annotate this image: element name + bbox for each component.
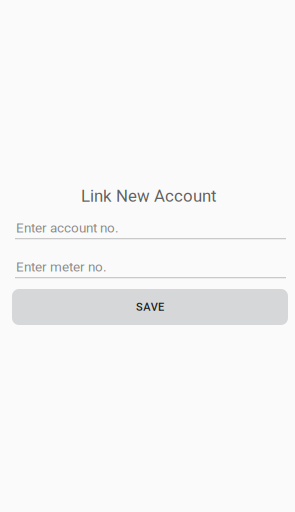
staticText: SAVE: [136, 300, 164, 313]
button[interactable]: Enter account no.: [15, 219, 286, 240]
staticText: Enter meter no.: [16, 259, 107, 275]
button[interactable]: Enter meter no.: [15, 258, 286, 279]
button[interactable]: SAVE: [12, 289, 288, 325]
staticText: Enter account no.: [16, 220, 119, 236]
staticText: Link New Account: [81, 186, 216, 206]
